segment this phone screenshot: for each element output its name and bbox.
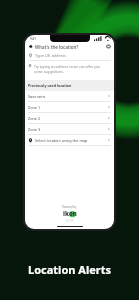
button[interactable]: Zone 3: [25, 124, 114, 134]
staticText: ikon: [63, 210, 77, 218]
button[interactable]: Back: [25, 42, 114, 51]
staticText: 9:41: [30, 37, 36, 41]
other: Help: [106, 44, 111, 49]
staticText: Powered by: [62, 205, 77, 209]
staticText: What's the location?: [35, 44, 79, 50]
button[interactable]: Zone 1: [25, 102, 114, 112]
button[interactable]: Zone 2: [25, 113, 114, 123]
staticText: Type UK address: [35, 53, 67, 58]
staticText: Save wins: [28, 94, 46, 99]
staticText: Select location using the map: [35, 138, 88, 143]
staticText: Zone 2: [28, 116, 41, 121]
staticText: Try typing an address so we can offer yo…: [34, 64, 101, 74]
button[interactable]: Type UK address: [25, 51, 114, 60]
button[interactable]: Select location using the map: [25, 135, 114, 145]
staticText: Zone 3: [28, 127, 41, 132]
staticText: Previously used location: [28, 83, 72, 88]
button[interactable]: Save wins: [25, 91, 114, 101]
staticText: Zone 1: [28, 105, 41, 110]
other: Back: [28, 44, 33, 49]
staticText: Location Alerts: [28, 262, 111, 277]
